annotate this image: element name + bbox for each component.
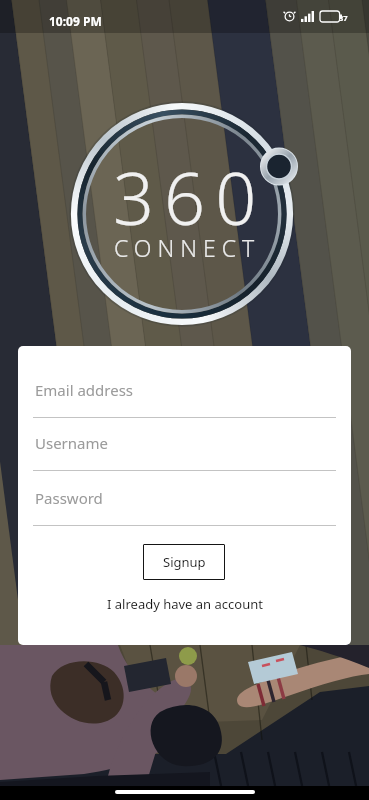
button[interactable]: I already have an account xyxy=(101,592,269,616)
button[interactable]: Signup xyxy=(143,544,225,580)
staticText: CONNECT xyxy=(114,232,261,263)
staticText: 37 xyxy=(339,13,348,23)
staticText: I already have an account xyxy=(107,595,263,613)
staticText: Username xyxy=(35,433,108,453)
staticText: Signup xyxy=(163,553,206,571)
button[interactable]: Email address xyxy=(18,379,351,427)
staticText: 360 xyxy=(113,148,267,246)
button[interactable]: Password xyxy=(18,487,351,535)
staticText: 10:09 PM xyxy=(49,13,102,29)
staticText: Password xyxy=(35,488,103,508)
button[interactable]: Username xyxy=(18,432,351,480)
staticText: Email address xyxy=(35,380,134,400)
